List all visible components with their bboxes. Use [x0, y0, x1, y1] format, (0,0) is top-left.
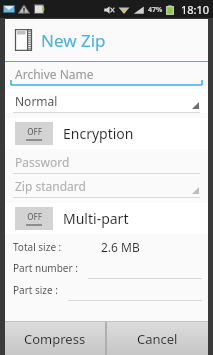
button[interactable]: Archive Name [5, 62, 208, 86]
staticText: OFF [27, 126, 42, 137]
button[interactable]: Cancel [107, 322, 208, 355]
staticText: 18:10 [181, 2, 210, 17]
button[interactable]: Part size : [5, 279, 208, 301]
staticText: OFF [27, 211, 42, 222]
button[interactable]: Part number : [5, 257, 208, 279]
staticText: Normal [15, 93, 58, 109]
staticText: 47% [148, 5, 163, 15]
staticText: Total size : [13, 240, 62, 254]
button[interactable]: Multi-part toggle, off [15, 203, 208, 234]
button[interactable]: Normal [5, 89, 208, 113]
staticText: Archive Name [15, 66, 94, 82]
button[interactable]: Compress [5, 322, 105, 355]
staticText: Compress [24, 330, 86, 348]
staticText: Password [15, 154, 70, 170]
staticText: New Zip [41, 29, 106, 52]
staticText: 2.6 MB [101, 239, 140, 255]
staticText: Multi-part [63, 209, 129, 228]
button[interactable]: Zip standard [5, 174, 208, 198]
button[interactable]: Encryption toggle, off [15, 118, 208, 149]
other: Multi-part toggle, off [15, 207, 53, 230]
staticText: Part size : [13, 283, 58, 297]
staticText: Encryption [63, 124, 134, 143]
staticText: Part number : [13, 261, 78, 275]
button[interactable]: Password [5, 149, 208, 174]
staticText: Zip standard [15, 178, 86, 194]
staticText: Cancel [137, 330, 178, 348]
other: Encryption toggle, off [15, 122, 53, 145]
